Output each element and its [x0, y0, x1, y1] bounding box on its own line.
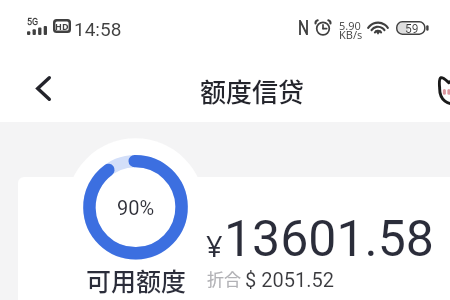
staticText: $ 2051.52: [245, 268, 334, 291]
staticText: 5.90: [339, 18, 361, 33]
button[interactable]: Back: [26, 71, 61, 106]
staticText: 可用额度: [86, 262, 187, 298]
staticText: 14:58: [74, 18, 122, 40]
staticText: 额度信贷: [200, 72, 305, 110]
staticText: 13601.58: [224, 210, 434, 269]
staticText: 折合: [207, 266, 241, 291]
staticText: 59: [405, 22, 419, 36]
staticText: HD: [55, 20, 69, 32]
button[interactable]: Customer service: [436, 76, 450, 104]
staticText: 5G: [27, 17, 39, 28]
staticText: ¥: [206, 226, 223, 265]
staticText: KB/s: [339, 27, 363, 42]
staticText: 90%: [117, 196, 155, 219]
